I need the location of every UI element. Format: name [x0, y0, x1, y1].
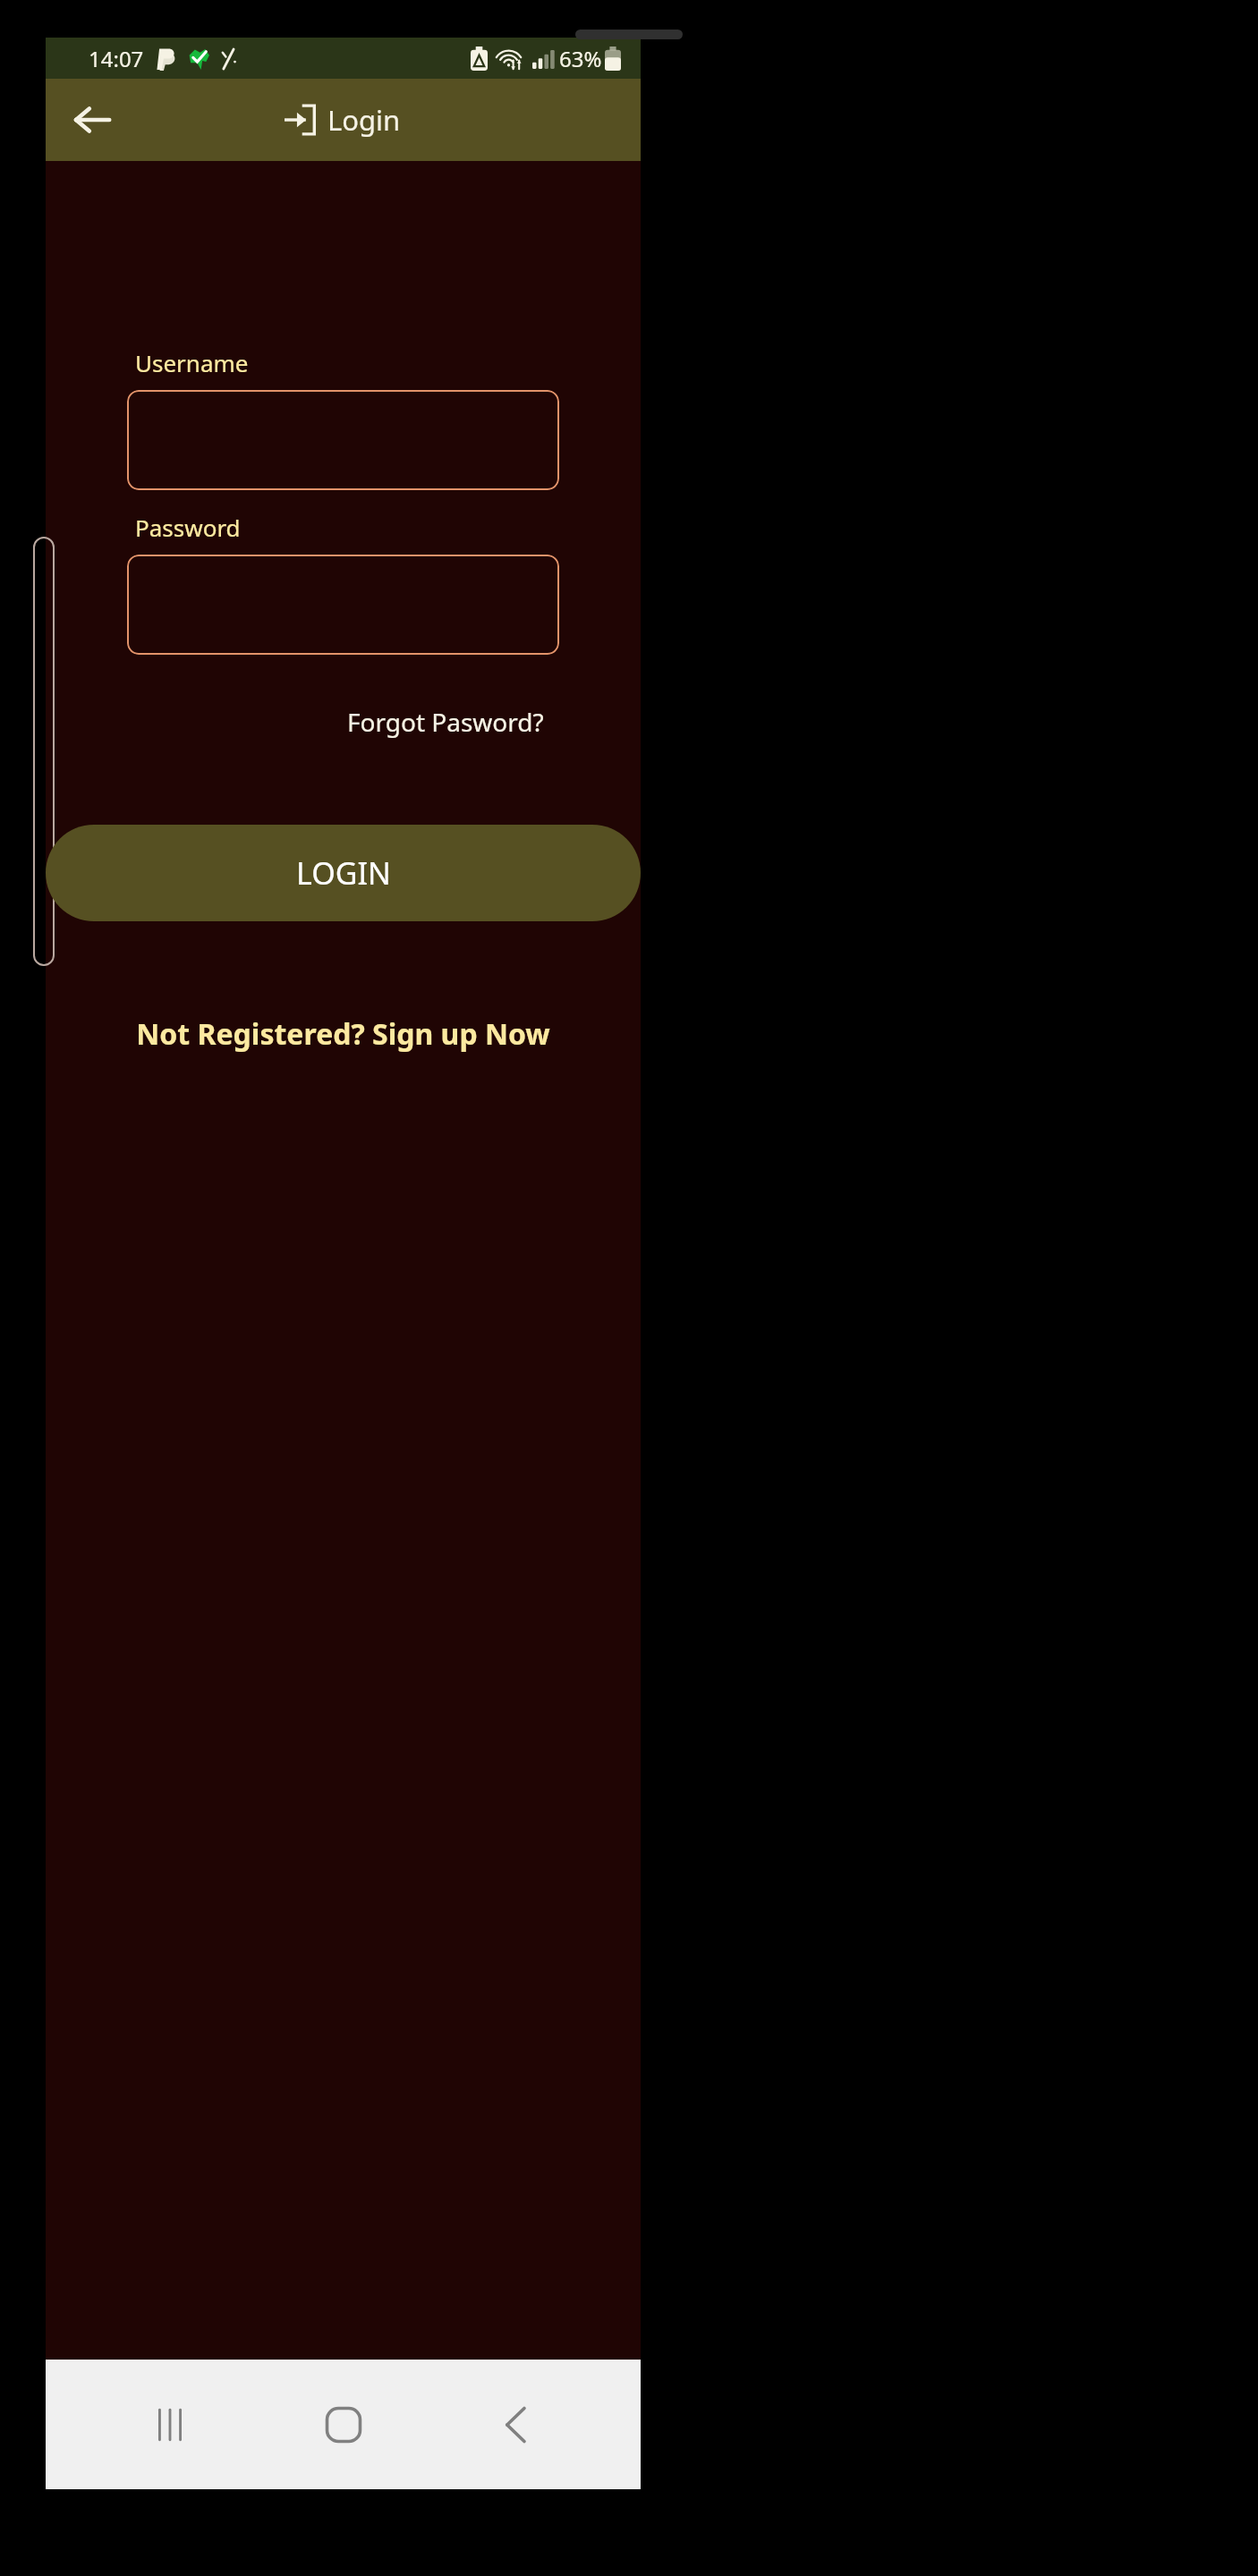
button[interactable]: LOGIN [46, 825, 641, 921]
button[interactable]: Back [467, 2376, 565, 2474]
button[interactable] [127, 390, 559, 490]
staticText: Password [135, 512, 241, 543]
staticText: Login [327, 101, 401, 139]
button[interactable]: Back [65, 93, 119, 147]
button[interactable]: Recents [121, 2376, 219, 2474]
button[interactable]: Not Registered? Sign up Now [129, 1007, 557, 1061]
button[interactable]: Forgot Pasword? [342, 699, 549, 744]
staticText: Username [135, 347, 249, 378]
button[interactable] [127, 555, 559, 655]
staticText: 63% [559, 44, 602, 73]
staticText: LOGIN [296, 852, 391, 894]
staticText: 14:07 [89, 44, 144, 73]
button[interactable]: Home [294, 2376, 393, 2474]
